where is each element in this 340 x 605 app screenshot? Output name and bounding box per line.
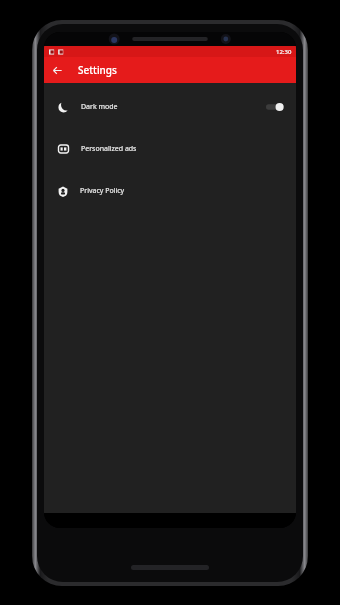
button[interactable]: Privacy Policy	[44, 177, 296, 205]
staticText: Settings	[78, 63, 117, 77]
staticText: Personalized ads	[81, 144, 137, 154]
staticText: 12:30	[276, 48, 292, 56]
button[interactable]: Back	[44, 57, 70, 83]
staticText: Privacy Policy	[80, 186, 125, 196]
button[interactable]: Dark mode	[44, 93, 296, 121]
button[interactable]: Dark mode switch	[262, 101, 284, 113]
staticText: Dark mode	[81, 102, 118, 112]
button[interactable]: Personalized ads	[44, 135, 296, 163]
